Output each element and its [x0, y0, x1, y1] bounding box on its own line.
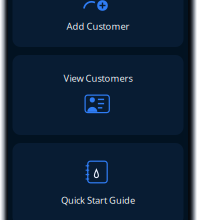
button[interactable]: View Customers — [8, 55, 188, 135]
button[interactable]: Quick Start Guide — [8, 143, 188, 220]
button[interactable]: Add Customer — [8, 0, 188, 47]
staticText: Quick Start Guide — [61, 194, 135, 206]
staticText: Add Customer — [66, 20, 129, 32]
staticText: View Customers — [63, 72, 132, 84]
